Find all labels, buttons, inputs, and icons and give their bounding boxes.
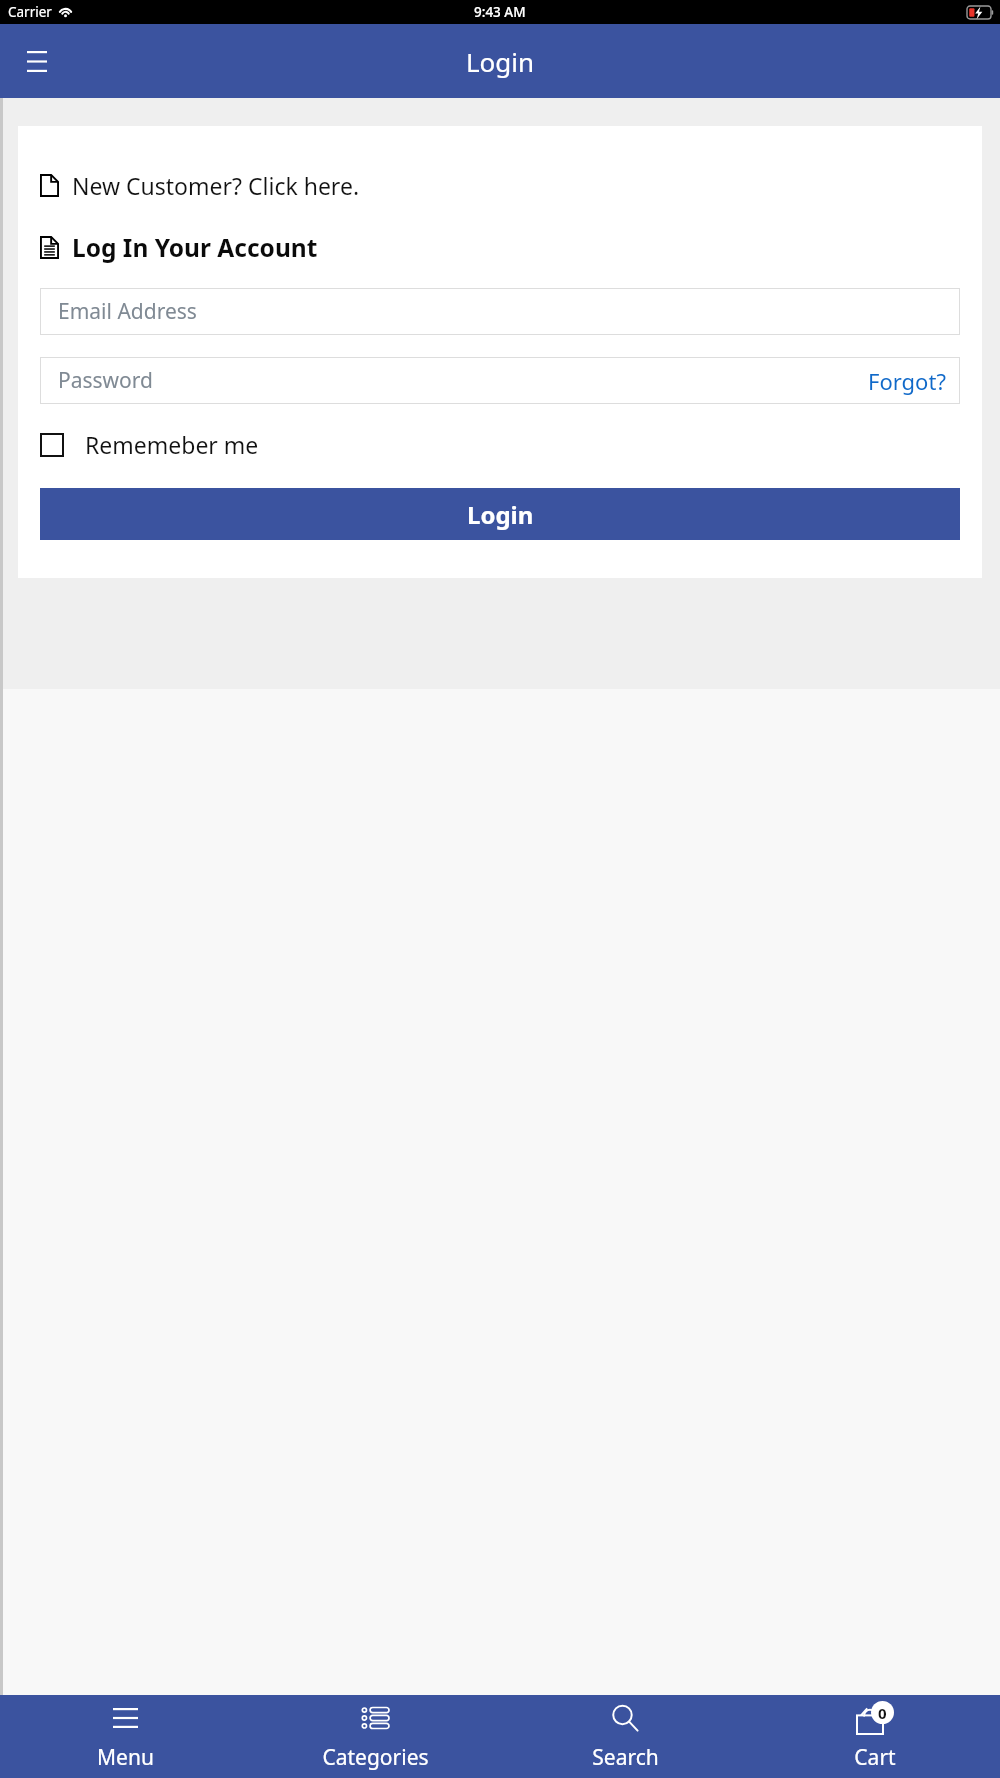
button[interactable]: Open navigation menu xyxy=(14,38,60,84)
button[interactable]: Categories xyxy=(250,1695,500,1778)
button[interactable]: Login xyxy=(40,488,960,540)
staticText: 9:43 AM xyxy=(474,3,526,21)
other: Categories xyxy=(362,1707,389,1729)
staticText: New Customer? Click here. xyxy=(72,170,360,201)
staticText: Rememeber me xyxy=(85,429,259,460)
button[interactable]: Search xyxy=(500,1695,750,1778)
other: Cart, 0 items xyxy=(856,1701,894,1735)
button[interactable]: Cart, 0 items xyxy=(750,1695,1000,1778)
staticText: Forgot? xyxy=(868,366,946,396)
button[interactable]: Forgot? xyxy=(868,357,960,404)
staticText: Cart xyxy=(854,1743,896,1772)
button[interactable]: Email Address xyxy=(40,288,960,335)
staticText: Categories xyxy=(322,1743,429,1772)
staticText: Menu xyxy=(97,1743,154,1772)
staticText: Login xyxy=(466,44,535,79)
button[interactable]: New Customer? Click here. xyxy=(40,170,960,201)
staticText: Carrier xyxy=(8,3,52,21)
button[interactable]: Rememeber me xyxy=(40,429,259,460)
staticText: Email Address xyxy=(58,297,197,326)
staticText: Log In Your Account xyxy=(72,231,318,264)
staticText: 0 xyxy=(878,1703,887,1723)
other: Search xyxy=(611,1704,639,1732)
button[interactable]: Menu xyxy=(0,1695,250,1778)
staticText: Search xyxy=(592,1743,659,1772)
other: Menu xyxy=(113,1708,138,1728)
staticText: Login xyxy=(467,498,534,531)
button[interactable]: Password xyxy=(40,357,960,404)
staticText: Password xyxy=(58,366,153,395)
